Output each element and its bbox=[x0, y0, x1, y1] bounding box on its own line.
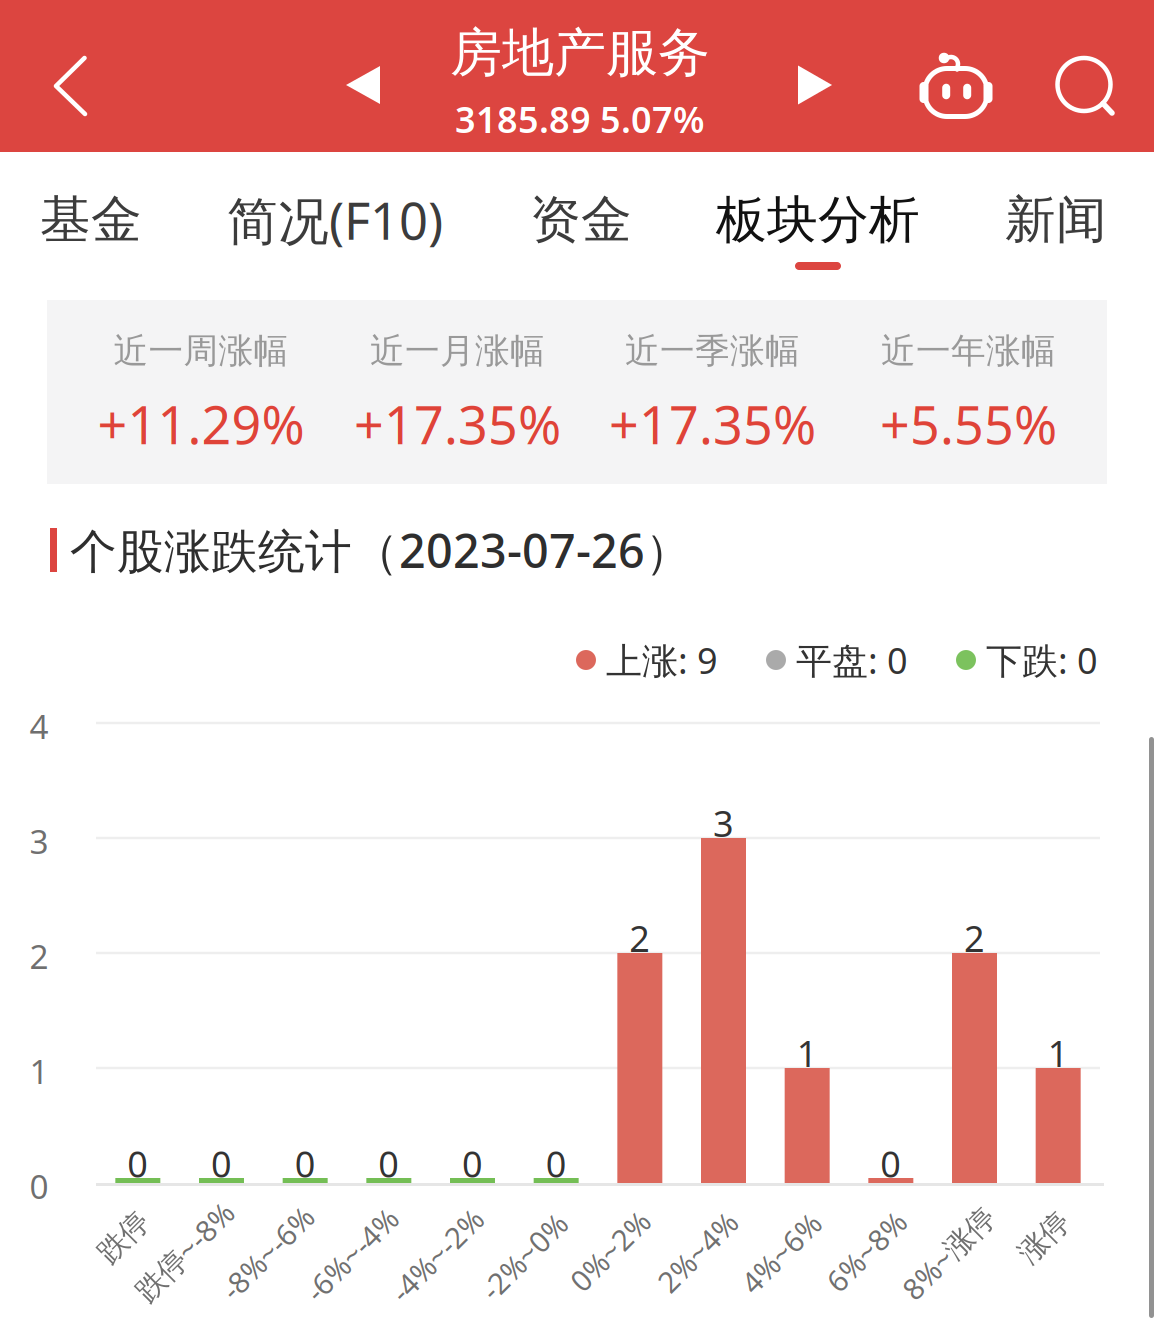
button[interactable]: 平盘: 0 bbox=[766, 636, 908, 684]
staticText: 1 bbox=[1048, 1029, 1069, 1077]
staticText: 0 bbox=[546, 1140, 567, 1187]
staticText: 资金 bbox=[530, 189, 632, 251]
staticText: -2%~0% bbox=[470, 1237, 578, 1276]
staticText: -8%~-6% bbox=[209, 1233, 326, 1272]
staticText: 近一周涨幅 bbox=[113, 330, 288, 372]
staticText: 2 bbox=[964, 914, 985, 962]
staticText: 0 bbox=[29, 1164, 48, 1208]
button[interactable]: 上涨: 9 bbox=[576, 636, 718, 684]
button[interactable]: 资金 bbox=[524, 181, 638, 259]
staticText: 2 bbox=[629, 914, 650, 962]
staticText: 房地产服务 bbox=[450, 21, 710, 85]
staticText: -6%~-4% bbox=[293, 1235, 410, 1274]
staticText: 4 bbox=[29, 704, 48, 748]
staticText: 0 bbox=[127, 1140, 148, 1187]
staticText: 3 bbox=[29, 819, 48, 863]
staticText: 近一季涨幅 bbox=[625, 330, 800, 372]
staticText: 0 bbox=[378, 1140, 399, 1187]
staticText: +5.55% bbox=[880, 389, 1057, 459]
staticText: 新闻 bbox=[1005, 189, 1107, 251]
button[interactable]: 下一板块 bbox=[787, 57, 843, 113]
staticText: 1 bbox=[797, 1029, 818, 1077]
staticText: 跌停 bbox=[94, 1219, 152, 1255]
button[interactable]: 基金 bbox=[34, 181, 148, 259]
staticText: +17.35% bbox=[609, 389, 816, 459]
staticText: 0 bbox=[462, 1140, 483, 1187]
staticText: 近一月涨幅 bbox=[370, 330, 545, 372]
staticText: 下跌: 0 bbox=[986, 636, 1098, 684]
staticText: 4%~6% bbox=[731, 1233, 830, 1272]
staticText: 基金 bbox=[40, 189, 142, 251]
staticText: 3 bbox=[713, 799, 734, 847]
button[interactable]: 返回 bbox=[38, 54, 102, 118]
staticText: 平盘: 0 bbox=[796, 636, 908, 684]
button[interactable]: 下跌: 0 bbox=[956, 636, 1098, 684]
button[interactable]: 板块分析 bbox=[710, 181, 926, 259]
staticText: 涨停 bbox=[1015, 1219, 1073, 1255]
staticText: -4%~-2% bbox=[378, 1235, 495, 1274]
staticText: 1 bbox=[29, 1049, 48, 1093]
staticText: 跌停~-8% bbox=[122, 1232, 247, 1271]
staticText: 0 bbox=[211, 1140, 232, 1187]
button[interactable]: 智能助手 bbox=[908, 47, 1004, 127]
staticText: 3185.89 5.07% bbox=[455, 95, 705, 143]
staticText: 0 bbox=[295, 1140, 316, 1187]
button[interactable]: 上一板块 bbox=[335, 57, 391, 113]
staticText: 板块分析 bbox=[716, 189, 920, 251]
staticText: 2 bbox=[29, 934, 48, 978]
staticText: 上涨: 9 bbox=[606, 636, 718, 684]
staticText: 0 bbox=[880, 1140, 901, 1187]
staticText: 6%~8% bbox=[817, 1232, 916, 1271]
staticText: +17.35% bbox=[354, 389, 561, 459]
staticText: 个股涨跌统计（2023-07-26） bbox=[70, 519, 692, 581]
button[interactable]: 简况(F10) bbox=[221, 178, 449, 262]
staticText: 2%~4% bbox=[648, 1232, 747, 1271]
staticText: +11.29% bbox=[97, 389, 304, 459]
staticText: 近一年涨幅 bbox=[881, 330, 1056, 372]
staticText: 8%~涨停 bbox=[890, 1234, 1006, 1273]
button[interactable]: 新闻 bbox=[999, 181, 1113, 259]
button[interactable]: 搜索 bbox=[1048, 48, 1124, 124]
staticText: 0%~2% bbox=[560, 1231, 659, 1270]
staticText: 简况(F10) bbox=[227, 186, 443, 254]
